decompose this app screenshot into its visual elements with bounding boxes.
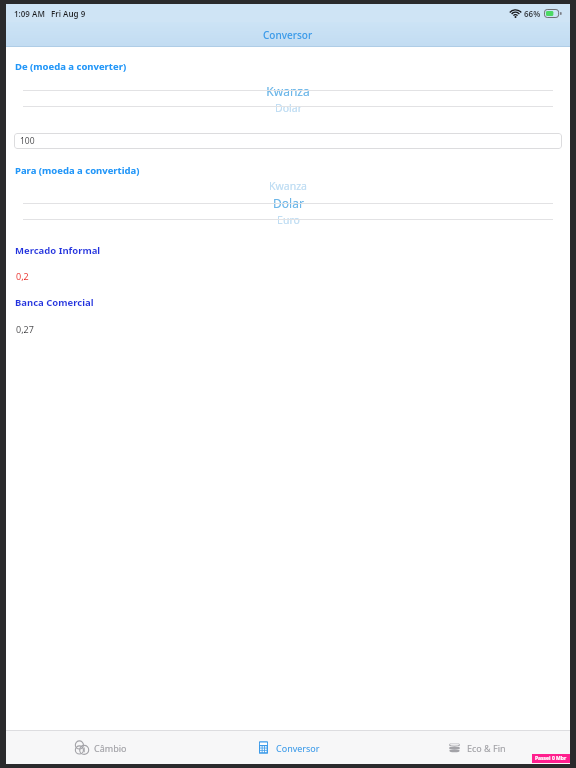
button[interactable]: Kwanza (6, 73, 570, 124)
staticText: Eco & Fin (467, 742, 506, 754)
staticText: Mercado Informal (15, 244, 101, 257)
staticText: Conversor (263, 28, 313, 42)
staticText: Fri Aug 9 (51, 8, 86, 19)
staticText: 0,2 (16, 270, 29, 282)
staticText: Passei 0 Mbr (535, 755, 567, 762)
staticText: Banca Comercial (15, 296, 94, 309)
staticText: Conversor (276, 742, 320, 754)
button[interactable]: Eco & Fin (382, 731, 570, 764)
staticText: 0,27 (16, 323, 34, 335)
button[interactable]: Conversor (194, 731, 382, 764)
staticText: Para (moeda a convertida) (15, 164, 140, 177)
button[interactable]: Kwanza (6, 177, 570, 228)
staticText: Euro (277, 213, 300, 227)
button[interactable]: Câmbio (6, 731, 194, 764)
staticText: Dolar (275, 101, 302, 115)
staticText: 100 (20, 135, 35, 147)
staticText: Kwanza (269, 179, 307, 193)
staticText: 1:09 AM (14, 8, 45, 19)
button[interactable]: 100 (14, 133, 562, 149)
staticText: 66% (524, 8, 541, 19)
staticText: Câmbio (94, 742, 127, 754)
staticText: Kwanza (266, 83, 310, 99)
staticText: Dolar (273, 195, 304, 211)
staticText: De (moeda a converter) (15, 60, 127, 73)
